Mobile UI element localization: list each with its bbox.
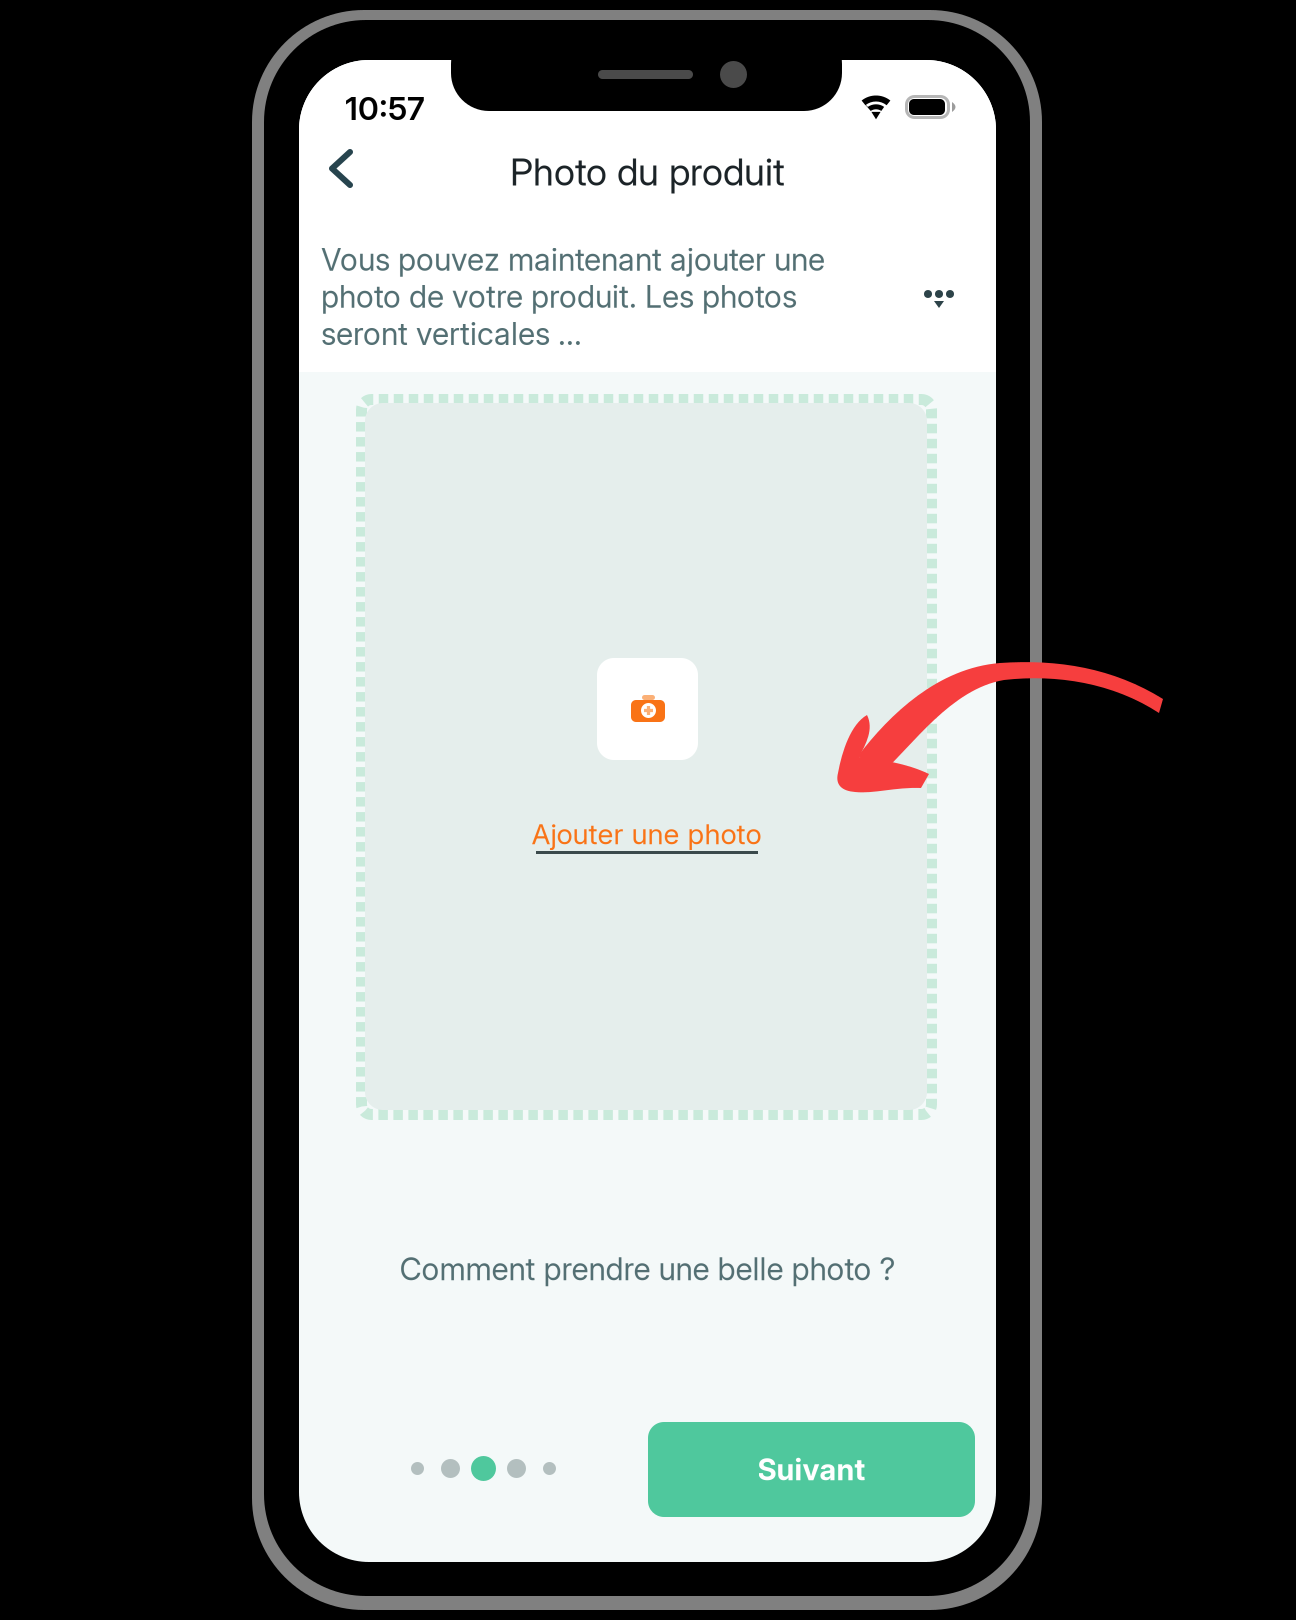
staticText: Ajouter une photo bbox=[531, 817, 761, 851]
staticText: Vous pouvez maintenant ajouter une photo… bbox=[321, 241, 825, 352]
staticText: Suivant bbox=[757, 1452, 865, 1487]
button[interactable]: Back bbox=[313, 132, 393, 212]
button[interactable]: More options bbox=[908, 267, 970, 329]
staticText: Comment prendre une belle photo ? bbox=[399, 1250, 895, 1287]
button[interactable]: Suivant bbox=[648, 1422, 975, 1517]
staticText: Photo du produit bbox=[510, 149, 785, 195]
staticText: 10:57 bbox=[345, 89, 425, 128]
button[interactable]: Ajouter une photo bbox=[356, 814, 937, 874]
